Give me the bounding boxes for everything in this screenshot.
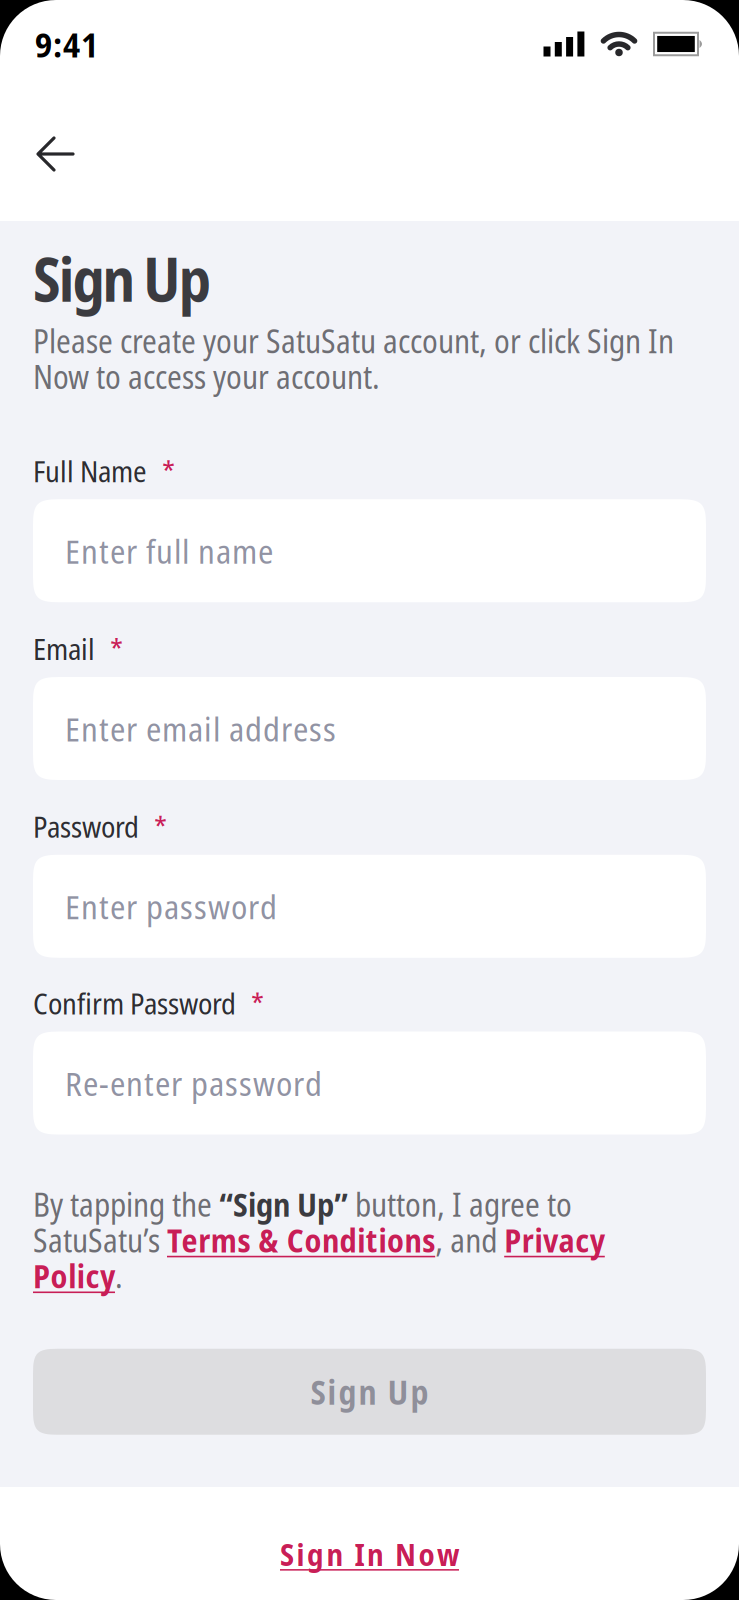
button[interactable]: Sign Up bbox=[33, 1349, 706, 1435]
button[interactable]: Enter full name bbox=[33, 499, 706, 602]
staticText: Policy bbox=[33, 1258, 115, 1294]
staticText: * bbox=[110, 632, 123, 665]
staticText: , and bbox=[435, 1222, 504, 1258]
button[interactable]: Sign In Now bbox=[280, 1487, 459, 1571]
staticText: * bbox=[251, 987, 264, 1020]
staticText: Terms & Conditions bbox=[167, 1222, 435, 1258]
button[interactable]: Back bbox=[0, 88, 73, 170]
button[interactable]: Enter email address bbox=[33, 677, 706, 780]
staticText: Privacy bbox=[504, 1222, 605, 1258]
button[interactable]: Enter password bbox=[33, 855, 706, 958]
staticText: By tapping the bbox=[33, 1186, 219, 1222]
staticText: “Sign Up” bbox=[219, 1186, 348, 1222]
staticText: SatuSatu’s bbox=[33, 1222, 167, 1258]
staticText: Sign Up bbox=[33, 245, 211, 312]
staticText: button, I agree to bbox=[348, 1186, 572, 1222]
staticText: . bbox=[115, 1258, 123, 1294]
staticText: * bbox=[154, 810, 167, 843]
staticText: * bbox=[162, 454, 175, 487]
staticText: Please create your SatuSatu account, or … bbox=[33, 323, 674, 394]
staticText: Re-enter password bbox=[65, 1064, 322, 1102]
button[interactable]: Re-enter password bbox=[33, 1031, 706, 1134]
staticText: Sign In Now bbox=[280, 1537, 459, 1571]
staticText: Email bbox=[33, 632, 95, 665]
staticText: Enter full name bbox=[65, 532, 273, 569]
staticText: Sign Up bbox=[310, 1373, 428, 1410]
staticText: Full Name bbox=[33, 454, 147, 487]
staticText: 9:41 bbox=[35, 25, 98, 63]
staticText: Enter email address bbox=[65, 710, 336, 747]
staticText: Password bbox=[33, 810, 139, 843]
staticText: Confirm Password bbox=[33, 987, 236, 1020]
staticText: Enter password bbox=[65, 888, 277, 925]
